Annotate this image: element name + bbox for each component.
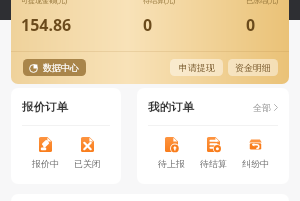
staticText: 全部: [253, 102, 271, 113]
button[interactable]: 报价订单: [11, 88, 121, 184]
staticText: 待结算: [200, 158, 227, 169]
button[interactable]: 已关闭: [66, 137, 108, 169]
button[interactable]: 数据中心: [23, 59, 86, 76]
staticText: 0: [143, 14, 153, 36]
staticText: 0: [246, 14, 256, 36]
staticText: 申请提现: [179, 62, 215, 73]
staticText: 已关闭: [74, 158, 101, 169]
button[interactable]: 我的订单: [137, 88, 289, 184]
button[interactable]: 全部: [253, 102, 278, 113]
staticText: 报价中: [32, 158, 59, 169]
staticText: 已冻结(元): [246, 0, 279, 6]
button[interactable]: 资金明细: [228, 59, 278, 76]
staticText: 我的订单: [148, 100, 194, 114]
staticText: 数据中心: [43, 62, 79, 73]
staticText: 可提现金额(元): [21, 0, 68, 6]
staticText: 待结算(元): [143, 0, 176, 6]
staticText: 纠纷中: [242, 158, 269, 169]
staticText: 待上报: [158, 158, 185, 169]
button[interactable]: 报价中: [24, 137, 66, 169]
staticText: 资金明细: [235, 62, 271, 73]
button[interactable]: 待结算: [192, 137, 234, 169]
staticText: 154.86: [21, 14, 72, 36]
button[interactable]: 申请提现: [170, 59, 223, 76]
button[interactable]: 待上报: [150, 137, 192, 169]
staticText: 报价订单: [22, 100, 68, 114]
button[interactable]: 纠纷中: [234, 137, 276, 169]
